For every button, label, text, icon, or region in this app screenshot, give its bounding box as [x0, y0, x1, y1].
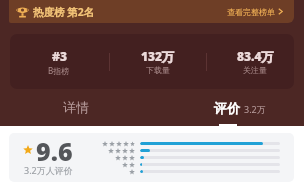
staticText: 3.2万 — [244, 103, 266, 115]
staticText: 详情 — [63, 99, 89, 115]
staticText: 132万 — [141, 48, 175, 64]
staticText: 热度榜 第2名 — [33, 5, 95, 19]
staticText: 83.4万 — [237, 48, 274, 64]
staticText: 下载量 — [146, 65, 170, 75]
staticText: 关注量 — [243, 65, 267, 75]
staticText: #3 — [52, 48, 67, 64]
other: Trophy — [16, 6, 29, 18]
staticText: 9.6 — [36, 134, 73, 168]
button[interactable]: 详情 — [0, 92, 152, 126]
staticText: B指榜 — [48, 65, 70, 76]
staticText: 查看完整榜单 — [227, 7, 275, 17]
staticText: 3.2万人评价 — [24, 164, 73, 176]
staticText: 评价 — [214, 100, 240, 116]
button[interactable]: 评价 — [152, 92, 304, 126]
button[interactable]: Trophy — [9, 0, 294, 23]
